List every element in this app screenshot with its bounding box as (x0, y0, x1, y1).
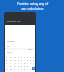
staticText: 6 (33, 58, 35, 61)
button[interactable]: 1 (26, 61, 29, 64)
button[interactable]: i (5, 64, 9, 67)
button[interactable]: = (32, 67, 35, 70)
button[interactable]: l (17, 61, 20, 64)
staticText: q (6, 67, 8, 70)
staticText: 8 (30, 55, 32, 58)
staticText: % (14, 55, 16, 58)
staticText: our calculators (21, 7, 44, 11)
button[interactable]: ) (23, 55, 26, 58)
button[interactable]: k (23, 67, 26, 70)
staticText: w (10, 67, 12, 70)
button[interactable]: u (13, 64, 17, 67)
staticText: 9 (33, 55, 35, 58)
button[interactable]: z (13, 67, 17, 70)
button[interactable]: ! (23, 58, 26, 61)
staticText: z (14, 67, 16, 70)
button[interactable]: 6 (32, 58, 35, 61)
button[interactable]: b (9, 58, 13, 61)
staticText: a (6, 58, 8, 61)
button[interactable]: t (13, 61, 17, 64)
staticText: ^ (21, 58, 23, 61)
button[interactable]: n (13, 58, 17, 61)
staticText: ) (24, 55, 25, 58)
button[interactable]: g (17, 64, 20, 67)
button[interactable]: 7 (26, 55, 29, 58)
staticText: e (21, 64, 23, 67)
staticText: c (10, 61, 12, 64)
button[interactable]: 4 (26, 58, 29, 61)
staticText: t (15, 61, 16, 64)
staticText: Practice using any of (17, 2, 48, 6)
staticText: b (10, 58, 12, 61)
button[interactable]: 2 (29, 61, 32, 64)
staticText: x (6, 55, 8, 58)
button[interactable]: 0 (26, 64, 29, 67)
button[interactable]: ( (20, 55, 23, 58)
button[interactable]: + (32, 64, 35, 67)
button[interactable]: ^ (20, 58, 23, 61)
staticText: x (30, 67, 32, 70)
staticText: d (24, 64, 26, 67)
button[interactable]: o (9, 64, 13, 67)
staticText: y (10, 55, 12, 58)
staticText: = (33, 67, 35, 70)
staticText: C (18, 55, 20, 58)
button[interactable]: q (5, 67, 9, 70)
button[interactable]: p (23, 61, 26, 64)
button[interactable]: d (23, 64, 26, 67)
staticText: - (27, 67, 28, 70)
button[interactable]: a (5, 58, 9, 61)
staticText: 5 (30, 58, 32, 61)
button[interactable]: 9 (32, 55, 35, 58)
button[interactable]: e (20, 64, 23, 67)
button[interactable]: x (5, 55, 9, 58)
staticText: u (14, 64, 16, 67)
staticText: + (33, 64, 35, 67)
button[interactable]: % (13, 55, 17, 58)
staticText: 2 (30, 61, 32, 64)
staticText: k (24, 67, 26, 70)
staticText: 4 (27, 58, 29, 61)
button[interactable]: C (17, 55, 20, 58)
button[interactable]: x (29, 67, 32, 70)
staticText: 1 (27, 61, 29, 64)
staticText: o (10, 64, 12, 67)
staticText: E (18, 58, 20, 61)
staticText: 3 (33, 61, 35, 64)
staticText: . (30, 64, 31, 67)
staticText: clear (28, 48, 33, 50)
button[interactable]: r (20, 61, 23, 64)
button[interactable]: - (26, 67, 29, 70)
staticText: 25 (7, 45, 10, 48)
button[interactable]: s (5, 61, 9, 64)
staticText: Rate (7, 51, 12, 54)
button[interactable]: 5 (29, 58, 32, 61)
staticText: r (21, 61, 22, 64)
button[interactable]: f (17, 67, 20, 70)
staticText: i (7, 64, 8, 67)
button[interactable]: w (9, 67, 13, 70)
staticText: s (6, 61, 8, 64)
staticText: f (18, 67, 19, 70)
button[interactable]: c (9, 61, 13, 64)
button[interactable]: y (9, 55, 13, 58)
staticText: p (24, 61, 26, 64)
staticText: Amount (7, 40, 15, 43)
staticText: 0 (27, 64, 29, 67)
button[interactable]: E (17, 58, 20, 61)
staticText: n (14, 58, 16, 61)
staticText: l (18, 61, 19, 64)
staticText: ( (21, 55, 22, 58)
button[interactable]: h (20, 67, 23, 70)
staticText: Scientific calc (7, 20, 21, 23)
staticText: 7 (27, 55, 29, 58)
staticText: ! (24, 58, 25, 61)
button[interactable]: 3 (32, 61, 35, 64)
staticText: h (21, 67, 23, 70)
button[interactable]: 8 (29, 55, 32, 58)
staticText: g (18, 64, 20, 67)
